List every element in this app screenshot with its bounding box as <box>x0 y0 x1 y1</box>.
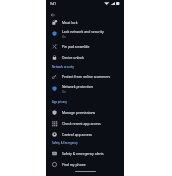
staticText: Device unlock <box>62 55 84 60</box>
staticText: Moat lock <box>62 20 78 25</box>
staticText: App privacy <box>52 100 68 104</box>
button[interactable]: Back <box>48 10 58 20</box>
button[interactable]: Network protection <box>46 82 124 95</box>
button[interactable]: Control app access <box>46 129 124 140</box>
staticText: Safety & Emergency <box>52 141 78 145</box>
staticText: Safety & emergency alerts <box>62 151 104 156</box>
button[interactable]: Pin pad scramble <box>46 41 124 52</box>
button[interactable]: Lock network and security <box>46 27 124 40</box>
staticText: On <box>62 90 66 94</box>
staticText: Protect from online scammers <box>62 74 111 79</box>
button[interactable]: Safety & emergency alerts <box>46 148 124 159</box>
staticText: Control app access <box>62 132 92 137</box>
staticText: 9:41 <box>50 2 56 6</box>
button[interactable]: Device unlock <box>46 52 124 63</box>
staticText: Pin pad scramble <box>62 44 90 49</box>
button[interactable]: Check recent app access <box>46 118 124 129</box>
button[interactable]: Find my phone <box>46 159 124 170</box>
button[interactable]: Moat lock <box>46 17 124 28</box>
button[interactable]: Protect from online scammers <box>46 71 124 82</box>
button[interactable]: Manage permissions <box>46 107 124 118</box>
staticText: Lock network and security <box>62 29 104 34</box>
staticText: Network security <box>52 65 74 69</box>
staticText: Find my phone <box>62 162 86 167</box>
staticText: On <box>62 35 66 39</box>
staticText: Network protection <box>62 84 93 89</box>
staticText: Check recent app access <box>62 121 101 126</box>
staticText: Manage permissions <box>62 110 96 115</box>
